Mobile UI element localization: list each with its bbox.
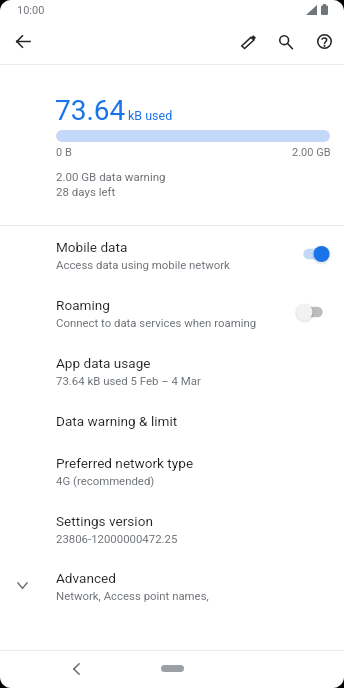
button[interactable]: Roaming [0, 284, 344, 342]
staticText: 73.64 [55, 94, 126, 127]
staticText: 73.64 kB used 5 Feb – 4 Mar [56, 374, 201, 387]
button[interactable]: On [295, 241, 331, 267]
staticText: Access data using mobile network [56, 258, 230, 271]
staticText: Network, Access point names, [56, 589, 209, 602]
button[interactable]: Advanced [0, 557, 344, 614]
button[interactable]: Back [6, 25, 39, 58]
staticText: kB used [128, 108, 173, 123]
staticText: Mobile data [56, 239, 128, 255]
staticText: 2.00 GB data warning [56, 170, 166, 183]
button[interactable]: Data warning & limit [0, 399, 344, 442]
button[interactable]: Home [161, 665, 184, 672]
staticText: App data usage [56, 355, 151, 371]
staticText: 0 B [56, 146, 72, 159]
staticText: 10:00 [17, 4, 45, 17]
staticText: Advanced [56, 570, 116, 586]
button[interactable]: Settings version [0, 500, 344, 557]
staticText: 28 days left [56, 185, 116, 198]
button[interactable]: Help [308, 25, 341, 58]
staticText: Connect to data services when roaming [56, 316, 257, 329]
button[interactable]: App data usage [0, 342, 344, 399]
button[interactable]: Off [295, 299, 331, 325]
staticText: Preferred network type [56, 455, 194, 471]
button[interactable]: Search [269, 25, 302, 58]
staticText: Settings version [56, 513, 153, 529]
staticText: 2.00 GB [292, 146, 331, 159]
staticText: Roaming [56, 297, 110, 313]
button[interactable]: Preferred network type [0, 442, 344, 500]
button[interactable]: Back [60, 653, 92, 685]
button[interactable]: Edit [232, 25, 265, 58]
staticText: Data warning & limit [56, 413, 178, 429]
button[interactable]: Mobile data [0, 226, 344, 284]
staticText: 4G (recommended) [56, 474, 155, 487]
staticText: 23806-12000000472.25 [56, 532, 178, 545]
